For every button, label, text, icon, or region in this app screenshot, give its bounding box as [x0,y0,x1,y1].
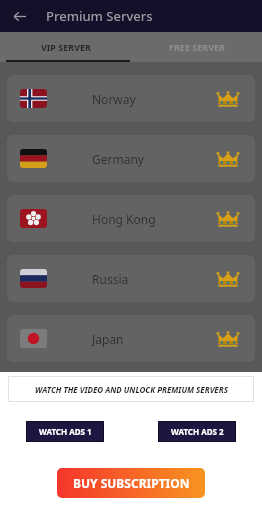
button[interactable]: Japan [7,315,255,362]
staticText: WATCH ADS 1 [39,426,92,437]
button[interactable]: WATCH ADS 1 [26,421,104,442]
button[interactable]: WATCH ADS 2 [158,421,236,442]
button[interactable]: Russia [7,255,255,302]
staticText: Russia [92,271,129,287]
staticText: Denmark [92,391,145,407]
button[interactable]: Norway [7,75,255,122]
button[interactable]: Hong Kong [7,195,255,242]
staticText: FREE SERVER [169,41,225,53]
button[interactable]: BUY SUBSCRIPTION [57,468,205,498]
button[interactable]: France [7,435,255,482]
button[interactable]: VIP SERVER [0,32,131,62]
staticText: Germany [92,151,144,167]
staticText: Japan [92,331,124,347]
button[interactable]: FREE SERVER [131,32,262,62]
button[interactable]: Denmark [7,375,255,422]
staticText: VIP SERVER [41,41,91,53]
staticText: Norway [92,91,136,107]
button[interactable]: Germany [7,135,255,182]
staticText: BUY SUBSCRIPTION [73,475,190,491]
staticText: WATCH ADS 2 [171,426,224,437]
staticText: Premium Servers [46,7,153,25]
staticText: WATCH THE VIDEO AND UNLOCK PREMIUM SERVE… [35,384,228,395]
button[interactable]: Back [8,5,30,27]
staticText: Hong Kong [92,211,156,227]
